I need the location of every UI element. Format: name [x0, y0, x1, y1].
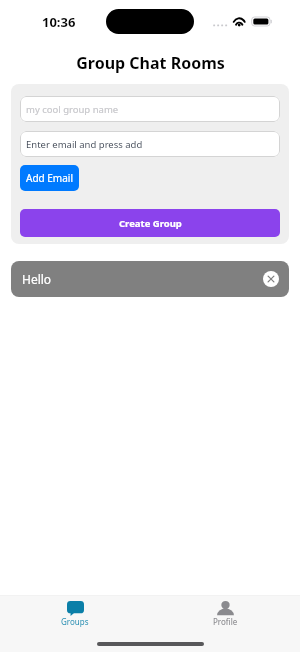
- staticText: Create Group: [119, 217, 182, 230]
- button[interactable]: Hello: [11, 261, 289, 297]
- staticText: Group Chat Rooms: [76, 52, 225, 74]
- button[interactable]: Profile: [150, 596, 300, 631]
- button[interactable]: Enter email and press add: [20, 131, 280, 157]
- staticText: Groups: [61, 616, 89, 627]
- staticText: Add Email: [26, 171, 73, 185]
- staticText: my cool group name: [26, 103, 119, 116]
- staticText: 10:36: [42, 13, 76, 31]
- button[interactable]: my cool group name: [20, 96, 280, 122]
- staticText: Profile: [213, 616, 238, 627]
- staticText: Hello: [22, 271, 52, 287]
- button[interactable]: Delete group: [263, 271, 279, 287]
- button[interactable]: Add Email: [20, 165, 79, 191]
- button[interactable]: Groups: [0, 596, 150, 631]
- staticText: Enter email and press add: [26, 138, 143, 151]
- button[interactable]: Create Group: [20, 209, 280, 237]
